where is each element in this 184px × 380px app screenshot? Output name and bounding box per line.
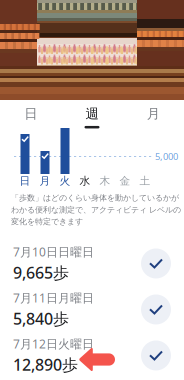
- staticText: 7月10日日曜日: [13, 244, 94, 260]
- staticText: 「歩数」はどのくらい身体を動かしているかが: [11, 193, 179, 203]
- staticText: 5,840歩: [13, 308, 69, 329]
- staticText: 月: [39, 174, 50, 187]
- staticText: 9,665歩: [13, 262, 69, 283]
- staticText: 土: [139, 174, 150, 187]
- staticText: 木: [99, 174, 110, 187]
- button[interactable]: 日: [0, 100, 61, 128]
- staticText: 火: [59, 174, 70, 187]
- button[interactable]: 7月11日月曜日: [0, 286, 184, 332]
- button[interactable]: 7月12日火曜日: [0, 332, 184, 378]
- staticText: 日: [19, 174, 30, 187]
- staticText: わかる便利な測定で、アクティビティ レベルの: [11, 205, 181, 215]
- button[interactable]: 月: [123, 100, 184, 128]
- staticText: 金: [119, 174, 130, 187]
- staticText: 7月11日月曜日: [13, 290, 94, 306]
- staticText: 変化を特定できます: [11, 217, 83, 226]
- button[interactable]: 週: [61, 100, 123, 128]
- staticText: 月: [147, 106, 160, 122]
- staticText: 12,890歩: [13, 354, 78, 375]
- staticText: 7月12日火曜日: [13, 336, 94, 352]
- button[interactable]: 7月10日日曜日: [0, 240, 184, 286]
- staticText: 日: [24, 106, 37, 122]
- staticText: 水: [79, 174, 90, 187]
- staticText: 5,000: [155, 150, 178, 163]
- staticText: 週: [85, 106, 98, 122]
